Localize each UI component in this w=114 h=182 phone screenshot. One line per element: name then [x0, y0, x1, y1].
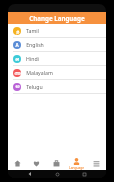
button[interactable]: Home [52, 170, 62, 178]
staticText: Tamil [26, 27, 39, 34]
staticText: അ [14, 71, 21, 76]
staticText: Language [69, 166, 84, 170]
staticText: English [26, 41, 44, 48]
button[interactable]: అ [8, 80, 106, 93]
button[interactable]: Back [25, 170, 35, 178]
staticText: த [16, 29, 19, 34]
button[interactable]: More [86, 157, 106, 170]
staticText: అ [15, 84, 20, 90]
button[interactable]: Home [8, 157, 27, 170]
button[interactable]: Favorites [27, 157, 46, 170]
button[interactable]: अ [8, 52, 106, 65]
staticText: Telugu [26, 83, 43, 90]
button[interactable]: த [8, 24, 106, 37]
staticText: अ [15, 56, 19, 62]
button[interactable]: A [8, 38, 106, 51]
button[interactable]: Recents [79, 170, 89, 178]
button[interactable]: അ [8, 66, 106, 79]
staticText: Hindi [26, 55, 39, 62]
staticText: A [15, 42, 19, 48]
staticText: Change Language [29, 14, 85, 22]
button[interactable]: Bag [46, 157, 66, 170]
button[interactable]: Language [66, 157, 86, 170]
staticText: Malayalam [26, 69, 53, 76]
